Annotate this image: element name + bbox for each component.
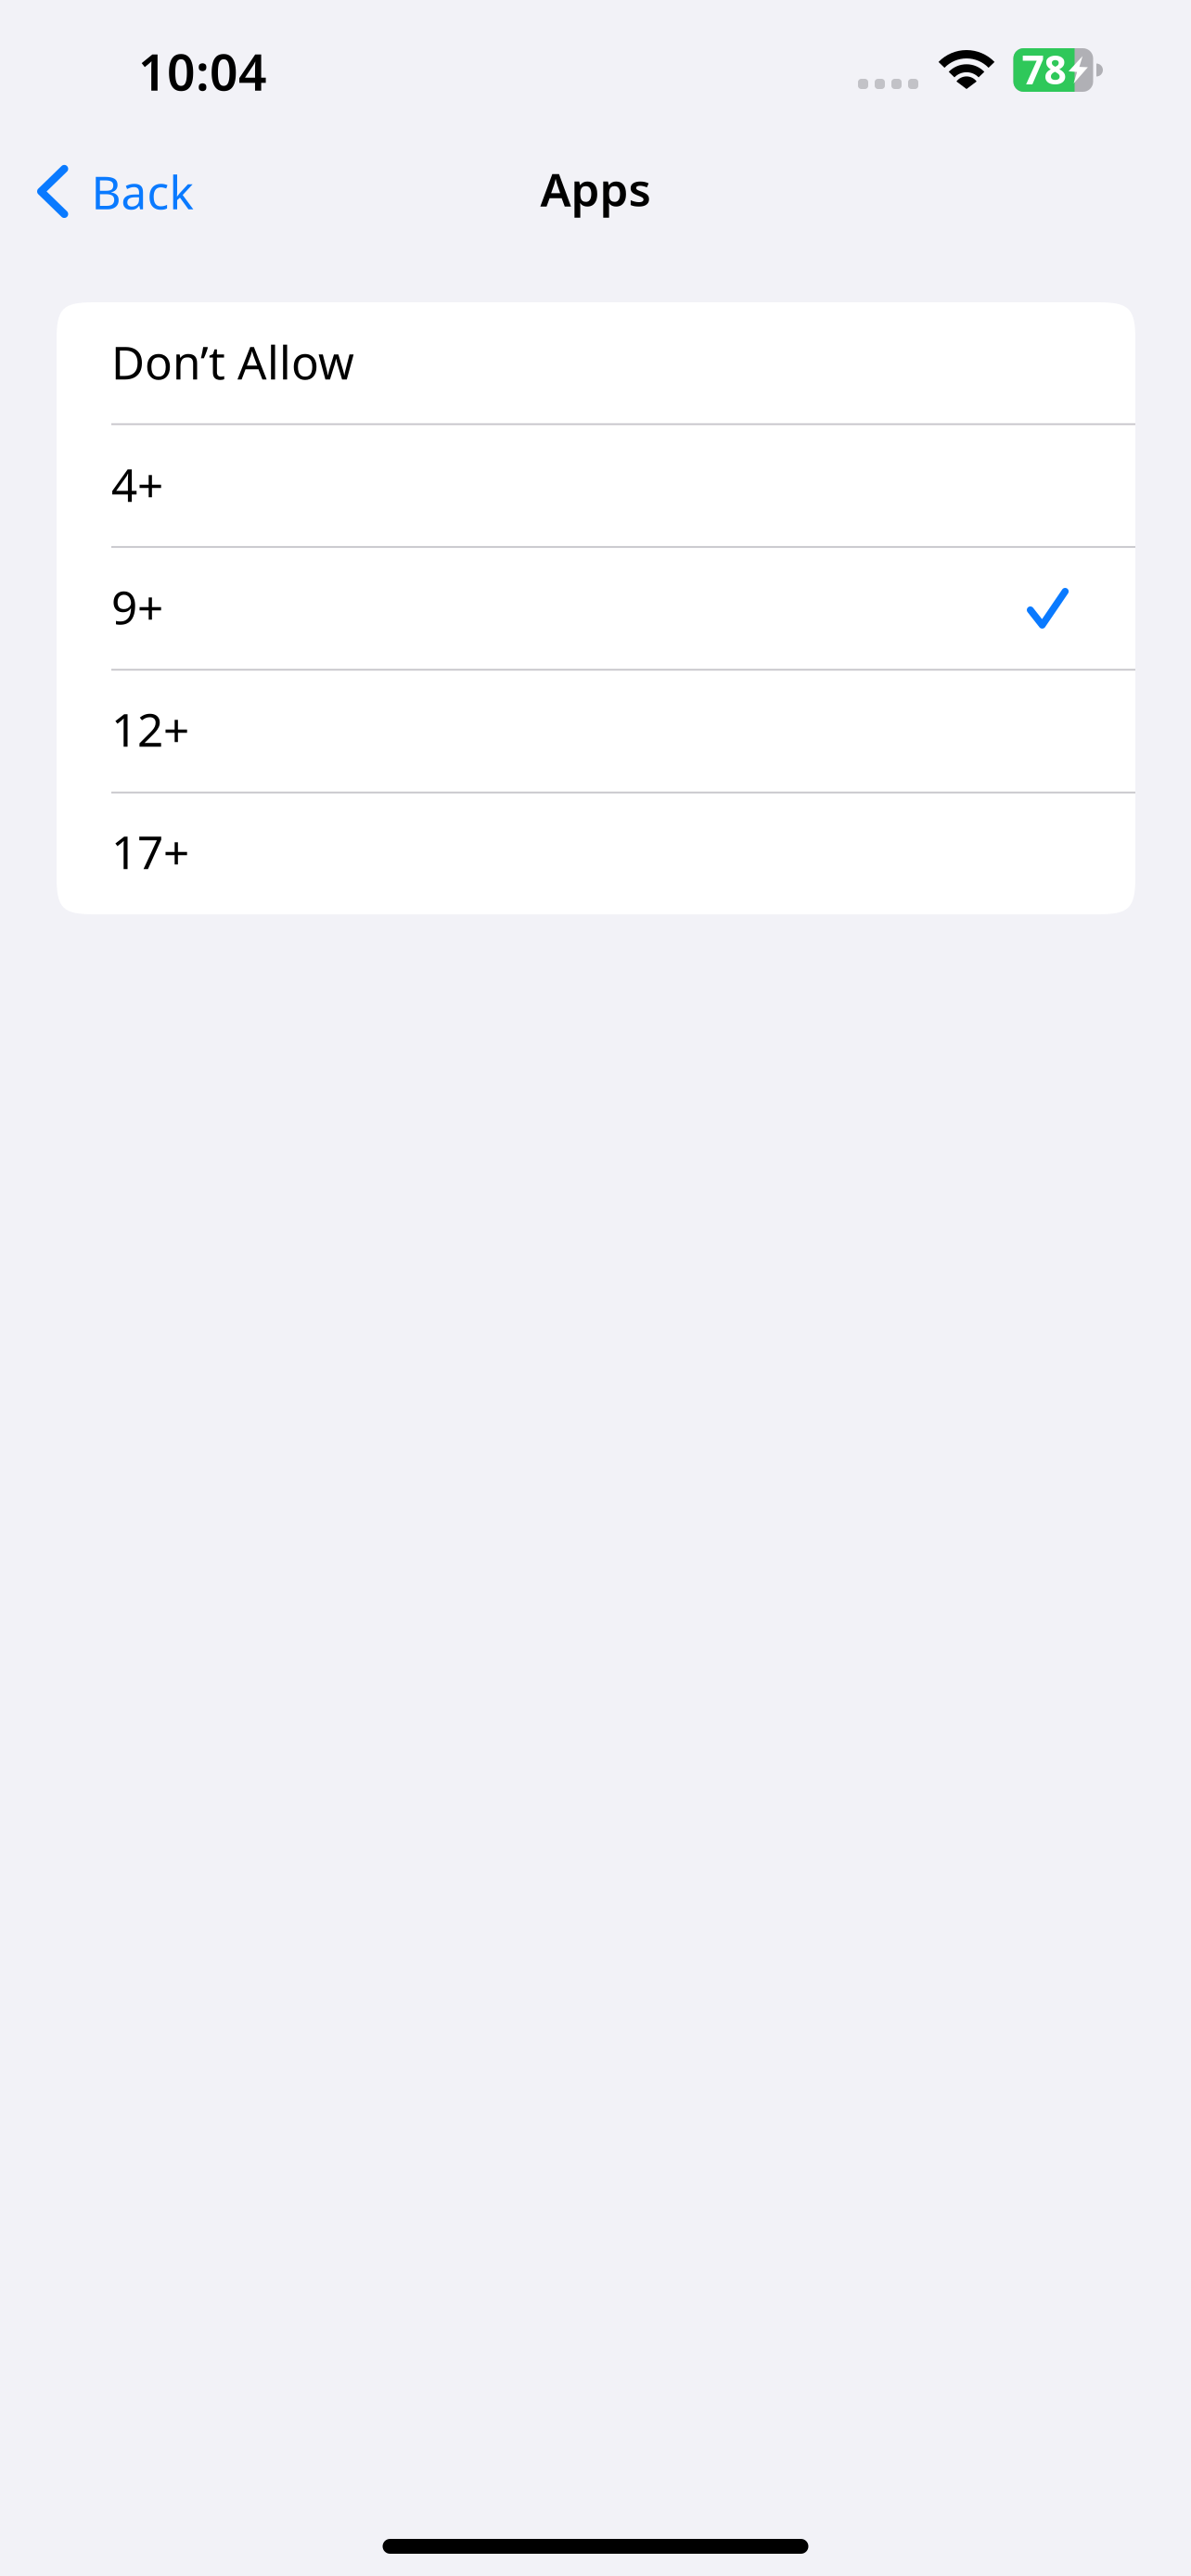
staticText: 9+: [111, 576, 163, 637]
button[interactable]: Back: [0, 140, 221, 242]
staticText: Apps: [540, 158, 651, 219]
staticText: Don’t Allow: [111, 331, 354, 392]
button[interactable]: 17+: [57, 792, 1135, 914]
button[interactable]: 12+: [57, 670, 1135, 792]
button[interactable]: 9+: [57, 547, 1135, 670]
staticText: 17+: [111, 821, 189, 882]
staticText: 10:04: [138, 39, 267, 104]
staticText: 4+: [111, 454, 163, 514]
staticText: 78: [1022, 43, 1066, 95]
button[interactable]: Don’t Allow: [57, 302, 1135, 425]
staticText: Back: [91, 161, 193, 222]
button[interactable]: 4+: [57, 425, 1135, 547]
staticText: 12+: [111, 698, 189, 759]
